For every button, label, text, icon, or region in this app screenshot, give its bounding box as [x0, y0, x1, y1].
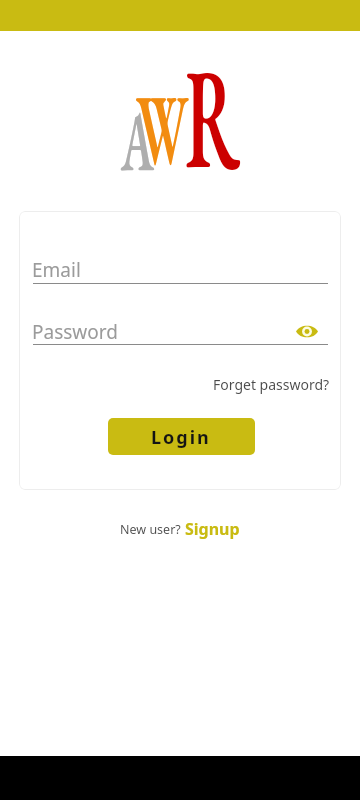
staticText: New user?: [120, 521, 181, 538]
staticText: A: [121, 85, 154, 195]
button[interactable]: Signup: [185, 518, 240, 540]
staticText: Login: [151, 425, 211, 450]
staticText: Password: [32, 319, 118, 345]
staticText: Email: [32, 257, 81, 283]
staticText: W: [136, 63, 188, 193]
button[interactable]: Show password: [293, 317, 321, 345]
button[interactable]: Login: [108, 418, 255, 455]
button[interactable]: Forget password?: [213, 375, 330, 394]
staticText: R: [185, 23, 240, 210]
